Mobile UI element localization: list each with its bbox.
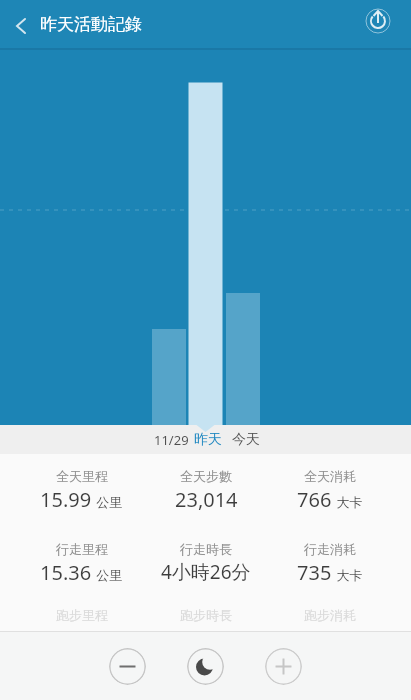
button[interactable] <box>109 648 146 685</box>
staticText: 全天里程 <box>56 468 108 484</box>
staticText: 全天步數 <box>180 468 232 484</box>
button[interactable] <box>0 0 44 48</box>
button[interactable]: 11/29 <box>154 431 189 449</box>
button[interactable] <box>265 648 302 685</box>
staticText: 跑步時長 <box>180 607 232 623</box>
staticText: 15.99 公里 <box>40 486 123 513</box>
staticText: 766 大卡 <box>297 486 363 513</box>
button[interactable] <box>363 0 411 48</box>
staticText: 全天消耗 <box>304 468 356 484</box>
staticText: 行走時長 <box>180 541 232 557</box>
staticText: 跑步消耗 <box>304 607 356 623</box>
staticText: 735 大卡 <box>297 559 363 586</box>
staticText: 跑步里程 <box>56 607 108 623</box>
button[interactable] <box>187 648 224 685</box>
staticText: 15.36 公里 <box>40 559 123 586</box>
button[interactable]: 今天 <box>232 431 260 449</box>
staticText: 4小時26分 <box>161 559 251 585</box>
staticText: 昨天活動記錄 <box>40 14 142 35</box>
button[interactable]: 昨天 <box>194 431 222 449</box>
staticText: 行走里程 <box>56 541 108 557</box>
staticText: 23,014 <box>175 486 238 513</box>
staticText: 行走消耗 <box>304 541 356 557</box>
